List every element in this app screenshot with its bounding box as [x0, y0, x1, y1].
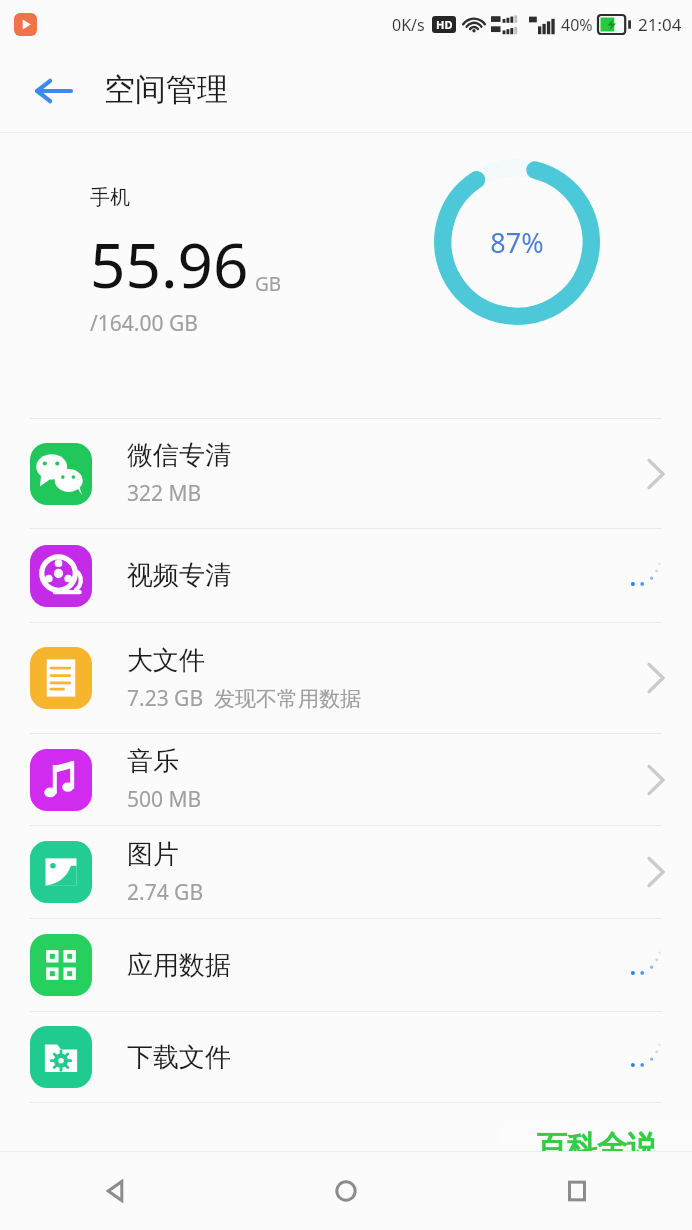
button[interactable]: 大文件	[0, 623, 692, 733]
staticText: 7.23 GB 发现不常用数据	[127, 684, 361, 713]
staticText: 322 MB	[127, 479, 202, 508]
button[interactable]: 下载文件	[0, 1012, 692, 1102]
staticText: 应用数据	[127, 949, 231, 982]
staticText: 图片	[127, 838, 179, 871]
staticText: 音乐	[127, 745, 179, 778]
staticText: 500 MB	[127, 785, 202, 814]
button[interactable]: Recents	[461, 1152, 692, 1230]
staticText: /164.00 GB	[90, 309, 198, 338]
button[interactable]: Home	[230, 1152, 461, 1230]
button[interactable]: 视频专清	[0, 529, 692, 622]
staticText: 2.74 GB	[127, 878, 204, 907]
staticText: 百科全说	[537, 1128, 657, 1166]
button[interactable]: 微信专清	[0, 419, 692, 528]
button[interactable]: 应用数据	[0, 919, 692, 1011]
staticText: 21:04	[638, 13, 682, 36]
staticText: 40%	[561, 14, 593, 36]
staticText: HD	[436, 17, 453, 32]
staticText: 87%	[490, 224, 544, 261]
button[interactable]: 音乐	[0, 734, 692, 825]
staticText: GB	[255, 271, 282, 297]
button[interactable]: Back	[18, 66, 88, 116]
staticText: 大文件	[127, 644, 205, 677]
staticText: 视频专清	[127, 559, 231, 592]
staticText: 0K/s	[392, 14, 425, 36]
button[interactable]: Back	[0, 1152, 230, 1230]
staticText: 下载文件	[127, 1041, 231, 1074]
staticText: 微信专清	[127, 439, 231, 472]
staticText: 空间管理	[104, 70, 228, 109]
staticText: 手机	[90, 185, 130, 210]
button[interactable]: 图片	[0, 826, 692, 918]
staticText: 助你轻松解决	[540, 1169, 654, 1193]
staticText: 55.96	[90, 222, 249, 306]
